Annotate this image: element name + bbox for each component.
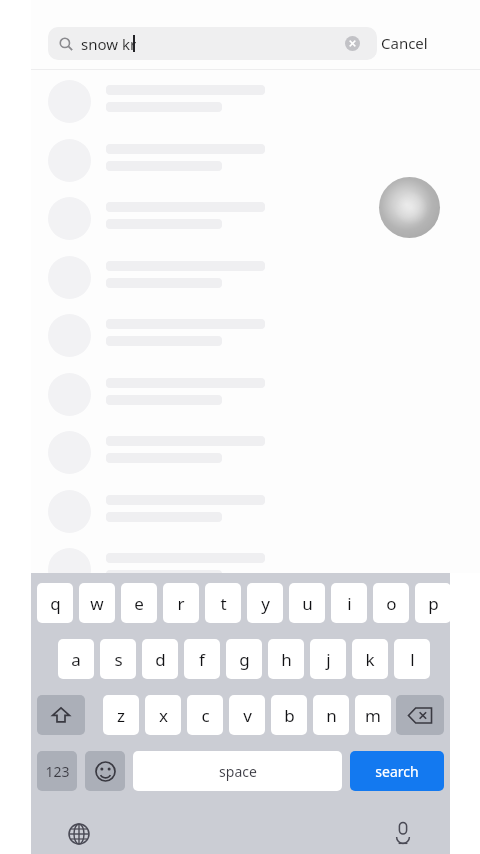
staticText: q (50, 592, 61, 615)
button[interactable]: Change keyboard language (68, 823, 90, 845)
button[interactable]: o (373, 583, 409, 623)
button[interactable]: Backspace (396, 695, 444, 735)
button[interactable]: w (79, 583, 115, 623)
button[interactable]: y (247, 583, 283, 623)
staticText: w (90, 592, 104, 615)
staticText: space (219, 762, 257, 781)
button[interactable]: i (331, 583, 367, 623)
button[interactable]: u (289, 583, 325, 623)
button[interactable]: 123 (37, 751, 77, 791)
staticText: i (347, 592, 352, 615)
staticText: j (326, 648, 331, 671)
button[interactable]: a (58, 639, 94, 679)
staticText: z (117, 704, 125, 727)
button[interactable]: Shift (37, 695, 85, 735)
staticText: search (375, 762, 419, 781)
button[interactable]: s (100, 639, 136, 679)
button[interactable]: Cancel (381, 23, 466, 63)
staticText: b (284, 704, 295, 727)
staticText: m (365, 704, 381, 727)
staticText: c (201, 704, 210, 727)
staticText: g (239, 648, 250, 671)
staticText: Cancel (381, 33, 428, 53)
button[interactable]: v (229, 695, 265, 735)
button[interactable]: search (350, 751, 444, 791)
staticText: x (159, 704, 168, 727)
staticText: u (302, 592, 313, 615)
staticText: p (428, 592, 439, 615)
staticText: e (134, 592, 144, 615)
button[interactable]: z (103, 695, 139, 735)
button[interactable]: c (187, 695, 223, 735)
button[interactable]: k (352, 639, 388, 679)
button[interactable]: Emoji keyboard (85, 751, 125, 791)
button[interactable]: h (268, 639, 304, 679)
staticText: d (155, 648, 166, 671)
button[interactable]: g (226, 639, 262, 679)
button[interactable]: Clear text (345, 36, 360, 51)
staticText: 123 (45, 762, 70, 781)
button[interactable]: d (142, 639, 178, 679)
button[interactable]: t (205, 583, 241, 623)
button[interactable]: e (121, 583, 157, 623)
staticText: a (71, 648, 81, 671)
button[interactable]: b (271, 695, 307, 735)
staticText: y (261, 592, 270, 615)
button[interactable]: q (37, 583, 73, 623)
staticText: o (386, 592, 397, 615)
button[interactable]: l (394, 639, 430, 679)
staticText: n (326, 704, 337, 727)
staticText: t (220, 592, 227, 615)
button[interactable]: x (145, 695, 181, 735)
button[interactable]: n (313, 695, 349, 735)
button[interactable]: p (415, 583, 451, 623)
button[interactable]: j (310, 639, 346, 679)
staticText: s (114, 648, 123, 671)
staticText: r (177, 592, 185, 615)
button[interactable]: space (133, 751, 342, 791)
button[interactable]: r (163, 583, 199, 623)
staticText: v (243, 704, 252, 727)
staticText: l (410, 648, 415, 671)
button[interactable]: Voice input (393, 821, 413, 845)
button[interactable]: snow kr (48, 27, 377, 60)
button[interactable]: m (355, 695, 391, 735)
staticText: f (199, 648, 205, 671)
staticText: k (365, 648, 375, 671)
button[interactable]: f (184, 639, 220, 679)
staticText: snow kr (81, 34, 137, 54)
staticText: h (281, 648, 292, 671)
